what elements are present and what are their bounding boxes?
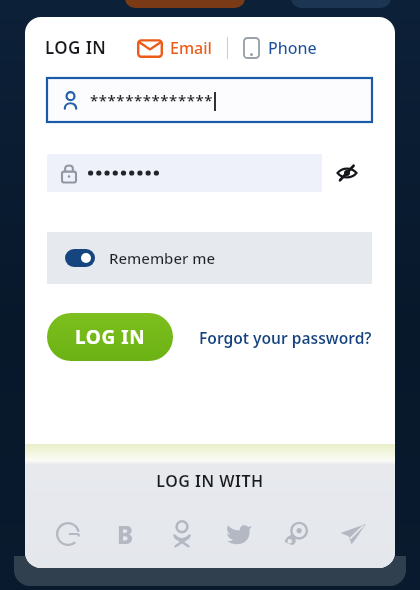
button[interactable]: Show password	[322, 154, 372, 192]
button[interactable]: Steam	[267, 514, 324, 554]
button[interactable]: VK	[96, 514, 153, 554]
staticText: LOG IN	[75, 324, 146, 350]
staticText: Phone	[268, 37, 317, 59]
staticText: **************	[90, 90, 214, 110]
button[interactable]: **************	[47, 78, 372, 122]
button[interactable]: Phone	[241, 33, 319, 63]
staticText: Email	[170, 37, 212, 59]
button[interactable]: Remember me	[47, 232, 372, 284]
button[interactable]: Twitter	[210, 514, 267, 554]
button[interactable]: Email	[135, 33, 214, 63]
staticText: LOG IN	[45, 36, 107, 59]
button[interactable]: Forgot your password?	[199, 321, 372, 354]
button[interactable]: Google	[39, 514, 96, 554]
button[interactable]: Telegram	[324, 514, 381, 554]
staticText: LOG IN WITH	[156, 470, 264, 492]
button[interactable]: Show password	[47, 154, 372, 192]
staticText: В	[117, 518, 133, 551]
button[interactable]: LOG IN	[47, 313, 173, 361]
staticText: Forgot your password?	[199, 327, 372, 348]
button[interactable]: Odnoklassniki	[153, 514, 210, 554]
staticText: Remember me	[109, 248, 216, 268]
